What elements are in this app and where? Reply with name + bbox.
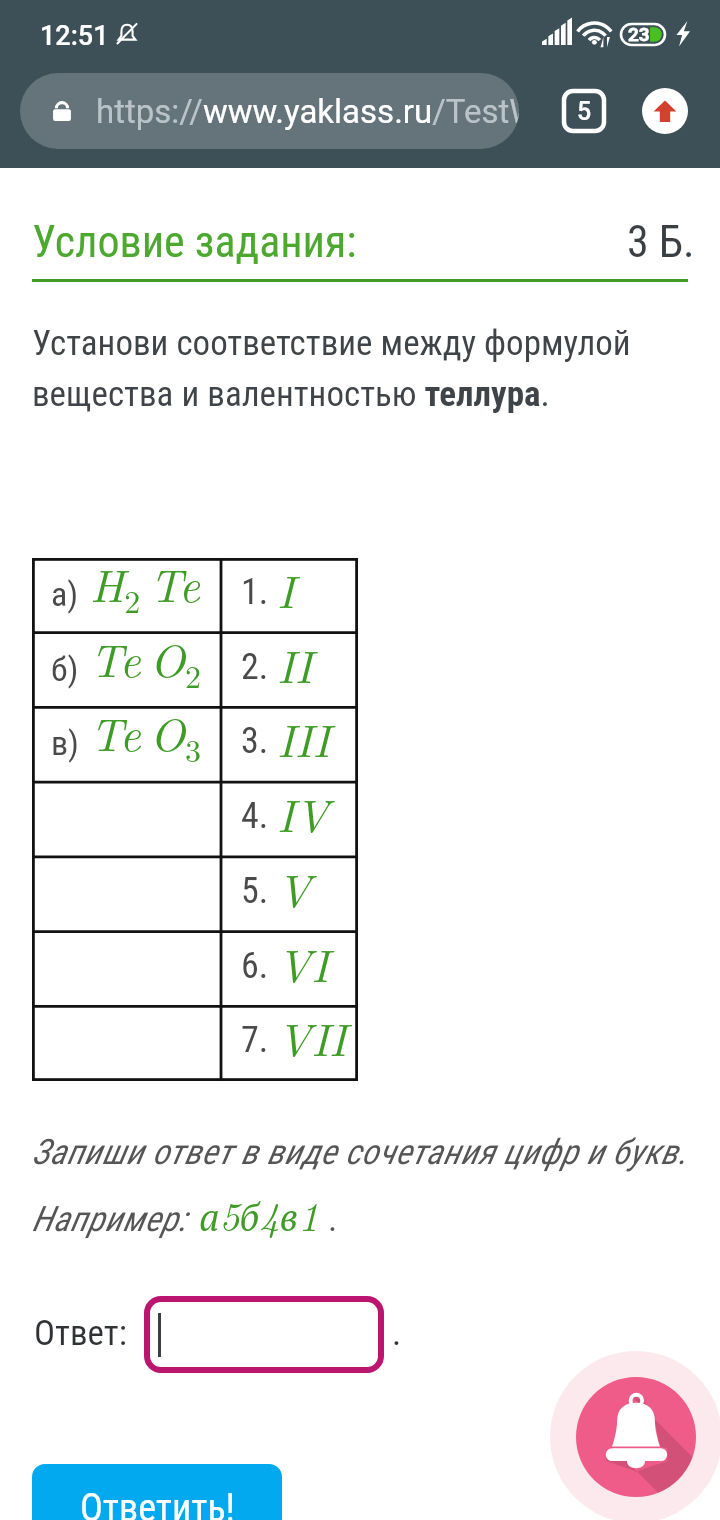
staticText: а) <box>51 574 79 614</box>
staticText: 23 <box>628 23 650 44</box>
staticText: https://www.yaklass.ru/TestW <box>96 92 519 131</box>
staticText: 1. <box>241 571 269 613</box>
staticText: VI <box>277 930 329 995</box>
button[interactable]: Answer field <box>144 1296 384 1373</box>
staticText: 6. <box>241 945 269 987</box>
staticText: в) <box>51 723 79 763</box>
staticText: II <box>277 631 313 696</box>
staticText: Условие задания: <box>32 216 357 268</box>
button[interactable]: Open in app <box>642 88 688 134</box>
staticText: Te O2 <box>90 625 202 697</box>
staticText: 4. <box>241 795 269 837</box>
staticText: 5. <box>241 870 269 912</box>
staticText: Например: <box>32 1199 187 1240</box>
staticText: Ответить! <box>80 1486 235 1520</box>
button[interactable]: https://www.yaklass.ru/TestW <box>20 73 519 149</box>
button[interactable]: Ответить! <box>32 1464 282 1520</box>
button[interactable]: Notifications <box>550 1351 720 1520</box>
staticText: IV <box>277 780 329 845</box>
staticText: VII <box>277 1004 347 1069</box>
staticText: 3 Б. <box>627 216 695 268</box>
staticText: V <box>277 855 312 920</box>
staticText: 7. <box>241 1019 269 1061</box>
staticText: I <box>277 556 295 621</box>
staticText: . <box>392 1313 402 1354</box>
staticText: б) <box>51 649 79 689</box>
staticText: Ответ: <box>34 1313 127 1354</box>
staticText: 3. <box>241 720 269 762</box>
staticText: а5б4в1 <box>199 1186 319 1243</box>
staticText: 12:51 <box>40 20 109 52</box>
staticText: Запиши ответ в виде сочетания цифр и бук… <box>32 1132 688 1173</box>
staticText: 2. <box>241 646 269 688</box>
staticText: Te O3 <box>90 699 202 771</box>
button[interactable]: Tabs <box>562 89 606 133</box>
staticText: III <box>277 705 331 770</box>
other: Silent mode <box>113 20 141 48</box>
staticText: Установи соответствие между формулой вещ… <box>32 323 652 414</box>
staticText: 5 <box>577 97 592 126</box>
staticText: . <box>328 1199 338 1240</box>
staticText: H2 Te <box>90 550 200 622</box>
